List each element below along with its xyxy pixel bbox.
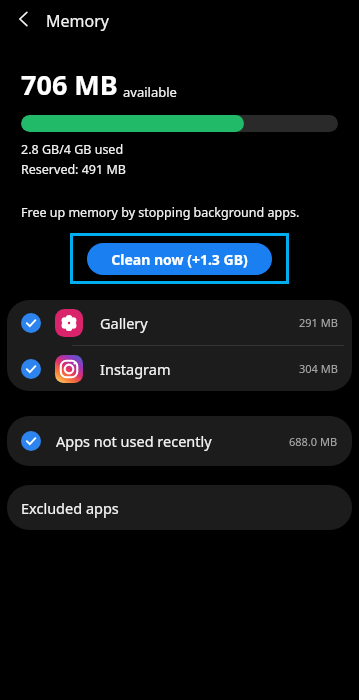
staticText: Instagram xyxy=(100,359,299,379)
staticText: 291 MB xyxy=(299,315,338,330)
staticText: 706 MB xyxy=(21,66,118,103)
staticText: Reserved: 491 MB xyxy=(21,161,126,178)
staticText: available xyxy=(123,83,177,101)
button[interactable]: Back xyxy=(12,7,36,31)
staticText: Free up memory by stopping background ap… xyxy=(21,204,300,221)
button[interactable]: Excluded apps xyxy=(7,485,352,530)
staticText: Excluded apps xyxy=(21,498,119,518)
button[interactable]: Gallery xyxy=(7,300,352,345)
staticText: Gallery xyxy=(100,313,299,333)
staticText: Apps not used recently xyxy=(56,431,289,451)
button[interactable]: Apps not used recently xyxy=(7,416,352,466)
staticText: 304 MB xyxy=(299,361,338,376)
staticText: Memory xyxy=(46,10,109,32)
staticText: Clean now (+1.3 GB) xyxy=(111,250,248,269)
button[interactable]: Clean now (+1.3 GB) xyxy=(87,243,272,275)
staticText: 2.8 GB/4 GB used xyxy=(21,141,124,158)
staticText: 688.0 MB xyxy=(289,434,338,449)
button[interactable]: Instagram xyxy=(7,346,352,391)
